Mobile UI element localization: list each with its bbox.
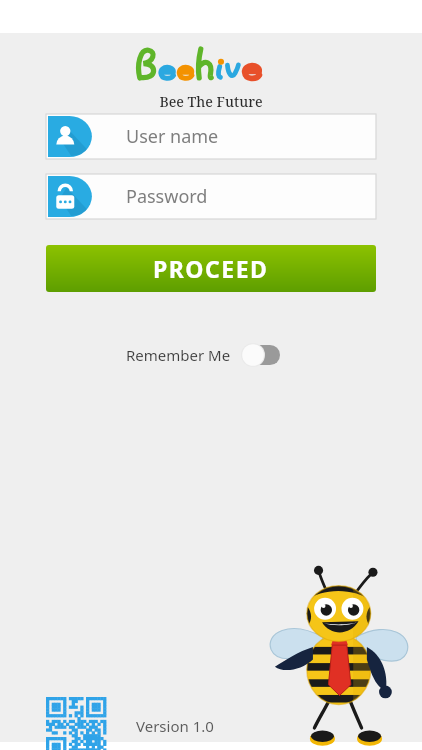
staticText: Password [126,184,208,209]
staticText: Bee The Future [0,92,422,111]
button[interactable]: PROCEED [46,245,376,292]
button[interactable]: Password [46,174,376,219]
button[interactable]: Remember Me [126,340,280,370]
button[interactable]: User name [46,114,376,159]
staticText: PROCEED [153,253,269,284]
staticText: User name [126,124,219,149]
staticText: Version 1.0 [136,716,296,736]
button[interactable]: QR code [46,697,106,750]
staticText: Remember Me [126,345,231,365]
